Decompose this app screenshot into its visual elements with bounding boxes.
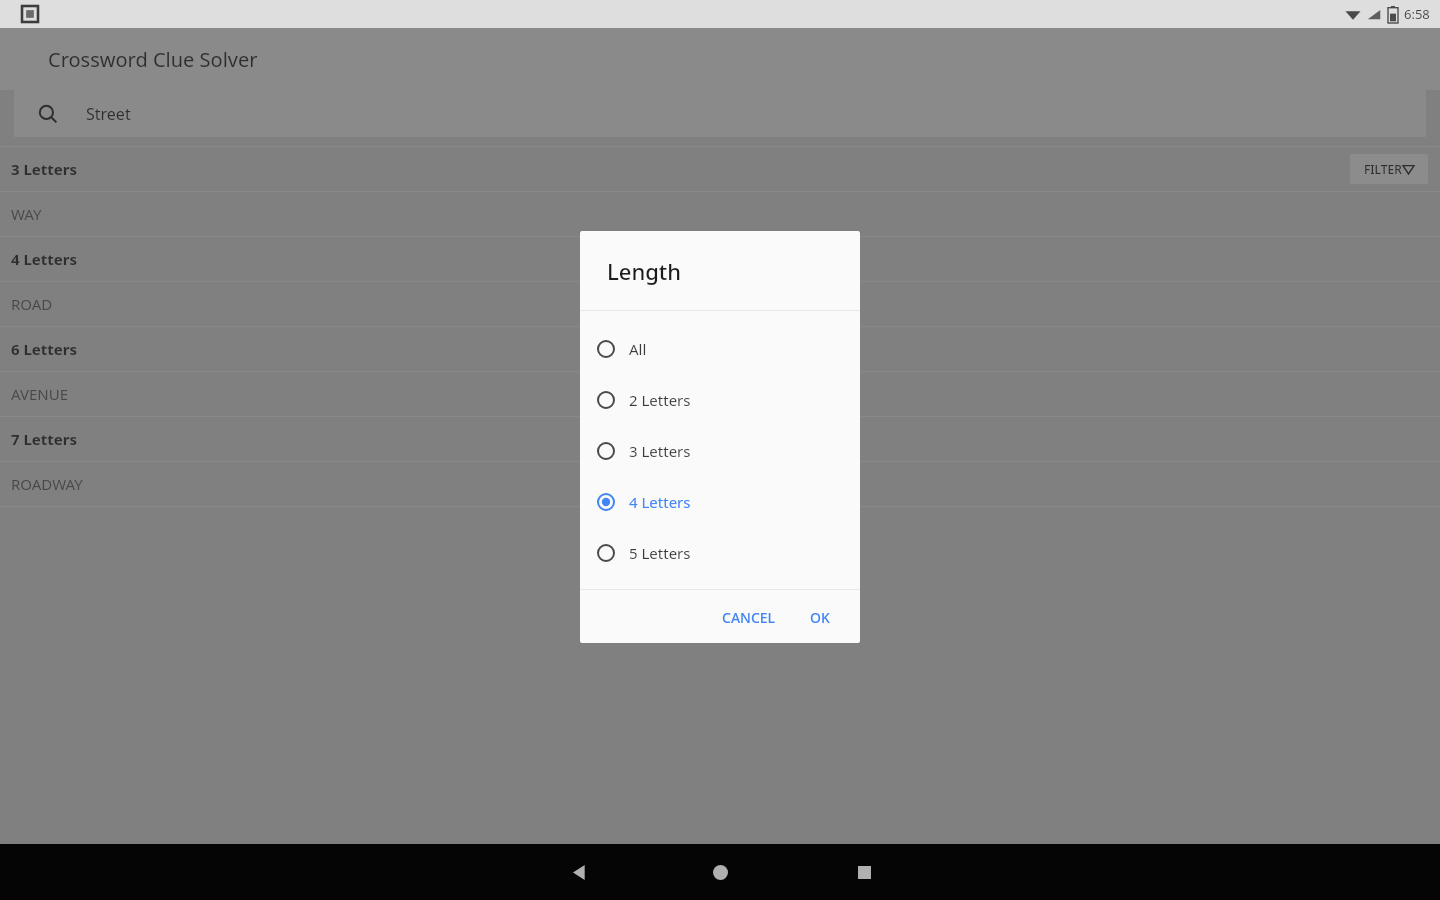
staticText: Crossword Clue Solver [48,46,258,73]
staticText: All [629,339,647,359]
staticText: AVENUE [11,384,69,404]
button[interactable]: WAY [0,192,1440,236]
button[interactable]: 7 Letters [0,417,1440,461]
other: Search [38,104,58,124]
button[interactable]: CANCEL [714,597,784,637]
button[interactable]: OK [802,597,838,637]
button[interactable]: ROADWAY [0,462,1440,506]
button[interactable]: Search [14,90,1426,137]
button[interactable]: 2 Letters [580,374,860,425]
staticText: 2 Letters [629,390,691,410]
staticText: CANCEL [722,608,776,627]
button[interactable]: Back [556,848,604,896]
staticText: WAY [11,204,42,224]
staticText: Street [86,103,131,125]
button[interactable]: 6 Letters [0,327,1440,371]
staticText: 4 Letters [11,249,78,269]
staticText: FILTER [1364,161,1402,177]
staticText: 6:58 [1404,5,1430,23]
staticText: 3 Letters [11,159,78,179]
staticText: 5 Letters [629,543,691,563]
button[interactable]: 3 Letters [0,147,1440,191]
staticText: Length [607,256,682,286]
button[interactable]: FILTER [1350,154,1428,184]
button[interactable]: 4 Letters [580,476,860,527]
button[interactable]: 5 Letters [580,527,860,578]
staticText: 6 Letters [11,339,78,359]
button[interactable]: 3 Letters [580,425,860,476]
button[interactable]: ROAD [0,282,1440,326]
button[interactable]: Recent apps [840,848,888,896]
button[interactable]: Home [696,848,744,896]
staticText: ROAD [11,294,53,314]
staticText: 4 Letters [629,492,691,512]
staticText: 7 Letters [11,429,78,449]
staticText: OK [810,608,830,627]
button[interactable]: AVENUE [0,372,1440,416]
staticText: 3 Letters [629,441,691,461]
button[interactable]: All [580,323,860,374]
staticText: ROADWAY [11,474,83,494]
button[interactable]: 4 Letters [0,237,1440,281]
